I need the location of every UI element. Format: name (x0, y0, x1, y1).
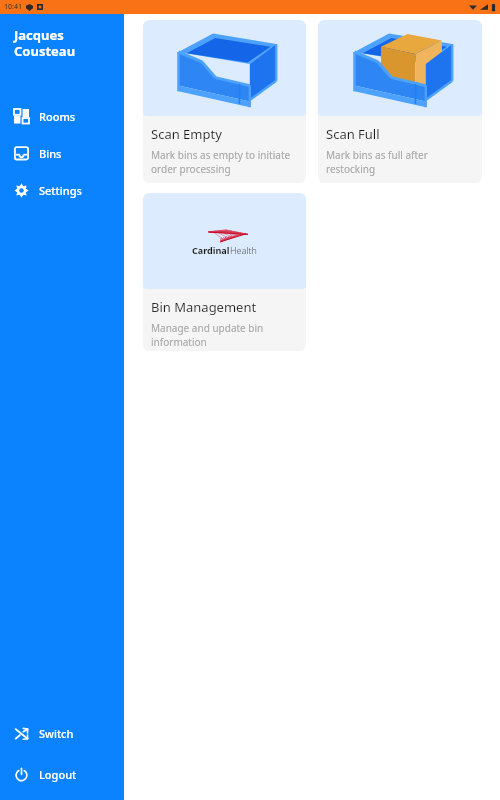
staticText: Mark bins as empty to initiate order pro… (151, 148, 300, 176)
staticText: Jacques Cousteau (14, 26, 76, 59)
staticText: 10:41 (4, 2, 22, 12)
staticText: Scan Full (326, 125, 380, 143)
staticText: Bins (39, 146, 62, 161)
button[interactable]: Rooms (0, 105, 124, 128)
button[interactable]: Scan Full (318, 20, 482, 183)
staticText: Settings (39, 183, 82, 198)
staticText: Health (230, 244, 257, 256)
button[interactable]: Settings (0, 179, 124, 202)
staticText: Switch (39, 726, 74, 741)
button[interactable]: Bins (0, 142, 124, 165)
button[interactable]: Cardinal (143, 193, 306, 351)
button[interactable]: Switch (0, 722, 124, 745)
staticText: Rooms (39, 109, 76, 124)
staticText: Logout (39, 767, 77, 782)
staticText: Manage and update bin information (151, 321, 300, 349)
staticText: Scan Empty (151, 125, 222, 143)
staticText: Cardinal (192, 244, 230, 256)
staticText: Mark bins as full after restocking (326, 148, 476, 176)
button[interactable]: Logout (0, 763, 124, 786)
button[interactable]: Scan Empty (143, 20, 306, 183)
staticText: Bin Management (151, 298, 257, 316)
